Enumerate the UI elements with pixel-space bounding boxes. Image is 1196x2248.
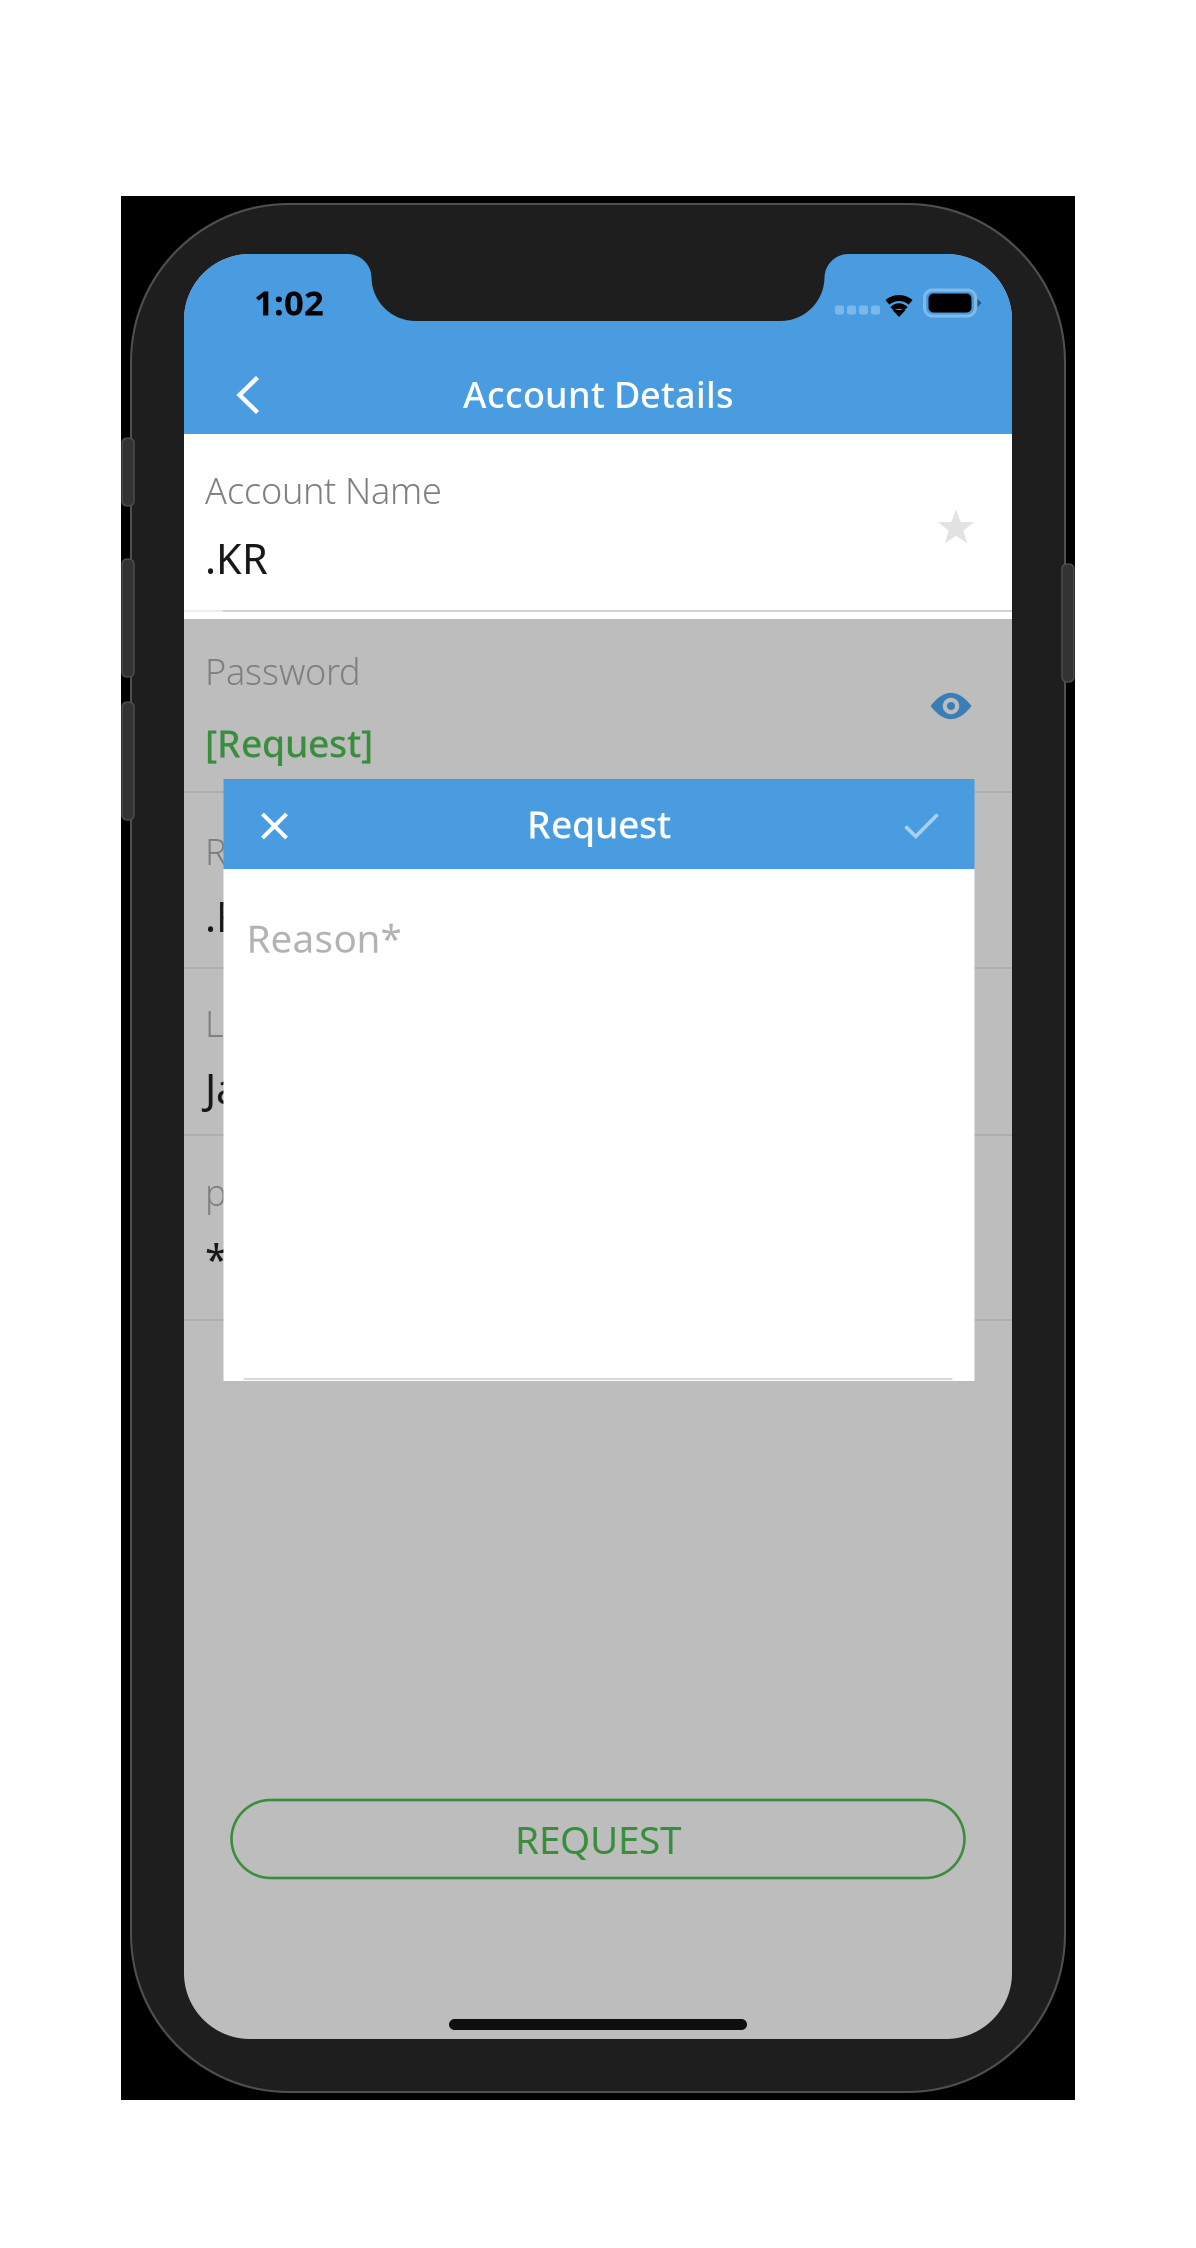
button[interactable]: REQUEST: [231, 1800, 964, 1878]
staticText: Jan 3, 2023: [205, 1061, 418, 1115]
button[interactable]: pwdSample: [184, 1136, 1012, 1321]
button[interactable]: Close: [239, 791, 309, 861]
button[interactable]: Password: [184, 619, 1012, 793]
staticText: .FR: [205, 889, 263, 943]
button[interactable]: Favourite: [916, 487, 996, 567]
button[interactable]: Show password: [911, 666, 991, 746]
staticText: Account Details: [463, 370, 733, 418]
button[interactable]: Related Account: [184, 793, 1012, 969]
staticText: .KR: [205, 531, 268, 585]
staticText: 1:02: [254, 279, 324, 325]
staticText: Request: [527, 799, 671, 849]
staticText: Password: [205, 647, 361, 695]
button[interactable]: Last Updated: [184, 969, 1012, 1136]
staticText: REQUEST: [515, 1813, 681, 1865]
button[interactable]: Submit: [886, 791, 956, 861]
staticText: Last Updated: [205, 999, 424, 1047]
button[interactable]: Account Name: [184, 434, 1012, 613]
staticText: *********: [205, 1232, 412, 1286]
staticText: Reason*: [246, 912, 401, 963]
staticText: pwdSample: [205, 1168, 395, 1216]
button[interactable]: Back: [211, 358, 287, 434]
staticText: Related Account: [205, 827, 468, 875]
staticText: Account Name: [205, 466, 442, 514]
staticText: [Request]: [205, 718, 373, 768]
